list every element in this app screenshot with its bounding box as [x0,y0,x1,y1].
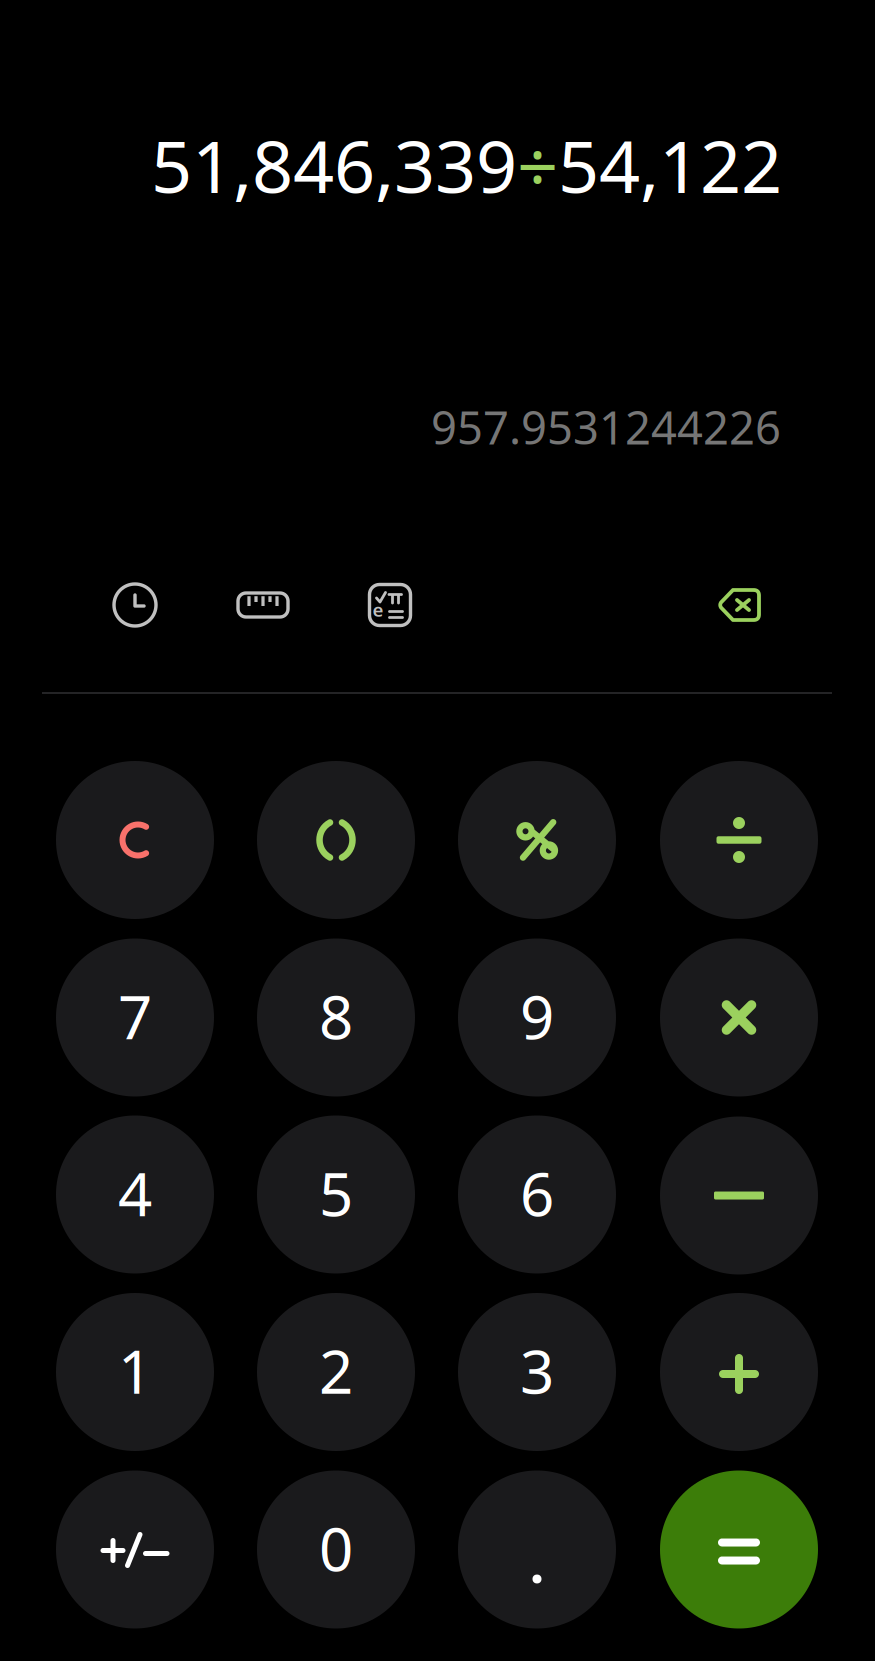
button[interactable]: 9 [458,938,616,1096]
button[interactable]: Decimal point [458,1470,616,1628]
staticText: ÷ [517,117,558,213]
button[interactable]: 8 [257,938,415,1096]
staticText: 0 [319,1508,353,1588]
staticText: 3 [520,1331,554,1410]
staticText: 957.9531244226 [431,397,781,457]
staticText: 6 [520,1153,554,1233]
staticText: 7 [118,976,152,1056]
staticText: 1 [118,1331,152,1410]
button[interactable]: 2 [257,1293,415,1451]
button[interactable]: Clear [56,761,214,919]
button[interactable]: History [114,584,156,626]
button[interactable]: Convert [238,593,288,617]
staticText: 9 [520,976,554,1056]
staticText: 54,122 [558,117,782,213]
button[interactable]: 7 [56,938,214,1096]
button[interactable]: Math Notes [369,584,410,625]
button[interactable]: 1 [56,1293,214,1451]
staticText: 8 [319,976,353,1056]
button[interactable]: Equals [660,1470,818,1628]
staticText: 2 [319,1331,353,1410]
button[interactable]: 6 [458,1115,616,1273]
button[interactable]: Toggle sign [56,1470,214,1628]
staticText: 51,846,339 [151,117,517,213]
staticText: e [372,597,383,622]
button[interactable]: 3 [458,1293,616,1451]
button[interactable]: Subtract [660,1116,818,1274]
button[interactable]: Multiply [660,938,818,1096]
button[interactable]: Delete [719,588,761,622]
button[interactable]: Parentheses [257,761,415,919]
button[interactable]: 5 [257,1115,415,1273]
button[interactable]: 0 [257,1470,415,1628]
staticText: 4 [118,1153,152,1233]
staticText: 5 [319,1153,353,1233]
button[interactable]: 4 [56,1115,214,1273]
button[interactable]: Percent [458,761,616,919]
button[interactable]: Divide [660,761,818,919]
button[interactable]: Add [660,1293,818,1451]
